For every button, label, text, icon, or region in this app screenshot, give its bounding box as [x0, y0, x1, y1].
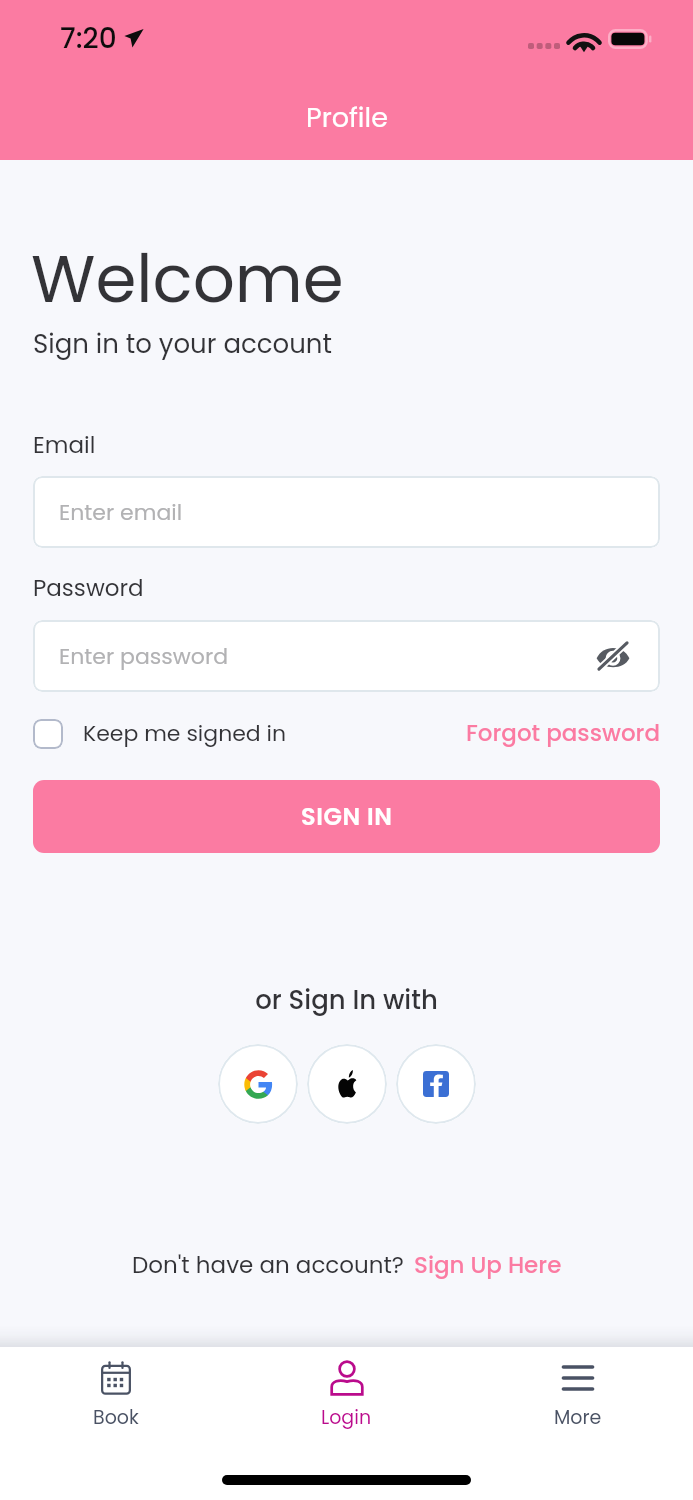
button[interactable]: Forgot password	[466, 717, 660, 749]
staticText: SIGN IN	[301, 800, 393, 834]
button[interactable]: Book	[0, 1347, 231, 1431]
button[interactable]: Keep me signed in	[33, 718, 287, 749]
staticText: Enter email	[59, 497, 183, 528]
staticText: 7:20	[60, 19, 117, 58]
staticText: Email	[33, 429, 96, 461]
staticText: Enter password	[59, 641, 229, 672]
staticText: Welcome	[31, 233, 344, 325]
staticText: Profile	[306, 99, 388, 137]
staticText: Login	[321, 1404, 372, 1431]
button[interactable]: Sign in with Facebook	[396, 1044, 476, 1124]
staticText: Password	[33, 572, 144, 604]
button[interactable]: More	[462, 1347, 693, 1431]
button[interactable]: SIGN IN	[33, 780, 660, 853]
button[interactable]: Show password	[590, 633, 636, 679]
button[interactable]: Enter email	[33, 476, 660, 548]
staticText: Don't have an account?	[132, 1249, 404, 1281]
button[interactable]: Login	[231, 1347, 462, 1431]
staticText: or Sign In with	[0, 982, 693, 1018]
staticText: Book	[93, 1404, 139, 1431]
button[interactable]: Enter password	[33, 620, 660, 692]
button[interactable]: Sign Up Here	[414, 1249, 562, 1281]
staticText: More	[554, 1404, 602, 1431]
staticText: Sign in to your account	[33, 326, 332, 362]
button[interactable]: Sign in with Apple	[307, 1044, 387, 1124]
button[interactable]: Sign in with Google	[218, 1044, 298, 1124]
staticText: Keep me signed in	[83, 718, 287, 749]
